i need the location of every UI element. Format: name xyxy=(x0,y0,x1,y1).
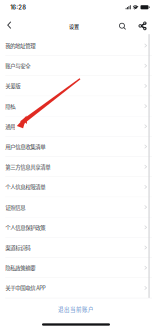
button[interactable]: 证照信息 xyxy=(0,197,152,217)
button[interactable]: 账户与安全 xyxy=(0,56,152,76)
button[interactable]: Back xyxy=(3,18,15,32)
staticText: 账户与安全 xyxy=(5,62,30,70)
staticText: 退出当前账户 xyxy=(58,305,94,313)
button[interactable]: 用户信息收集清单 xyxy=(0,137,152,157)
button[interactable]: 隐私 xyxy=(0,96,152,116)
button[interactable]: Share xyxy=(136,18,149,32)
button[interactable]: 个人信息权限清单 xyxy=(0,177,152,197)
staticText: 16:28 xyxy=(10,4,26,11)
staticText: 我的地址管理 xyxy=(5,42,35,49)
staticText: 设置 xyxy=(69,22,79,30)
button[interactable]: 退出当前账户 xyxy=(0,299,152,318)
button[interactable]: 个人信息保护政策 xyxy=(0,217,152,238)
staticText: 个人信息保护政策 xyxy=(5,223,45,231)
button[interactable]: 第三方信息共享清单 xyxy=(0,157,152,177)
button[interactable]: 关爱版 xyxy=(0,76,152,96)
button[interactable]: 通用 xyxy=(0,116,152,137)
button[interactable]: 隐私政策摘要 xyxy=(0,258,152,278)
button[interactable]: Search xyxy=(116,18,129,32)
staticText: 隐私政策摘要 xyxy=(5,264,35,272)
staticText: 证照信息 xyxy=(5,203,25,211)
staticText: 通用 xyxy=(5,122,15,130)
staticText: 用户信息收集清单 xyxy=(5,143,45,150)
button[interactable]: 渠道标识码 xyxy=(0,238,152,258)
staticText: 关爱版 xyxy=(5,82,20,90)
staticText: 个人信息权限清单 xyxy=(5,183,45,191)
staticText: 渠道标识码 xyxy=(5,244,30,251)
staticText: 第三方信息共享清单 xyxy=(5,163,50,171)
button[interactable]: 关于中国电信 APP xyxy=(0,278,152,298)
staticText: 关于中国电信 APP xyxy=(5,284,45,292)
button[interactable]: 我的地址管理 xyxy=(0,36,152,56)
staticText: 隐私 xyxy=(5,102,15,110)
